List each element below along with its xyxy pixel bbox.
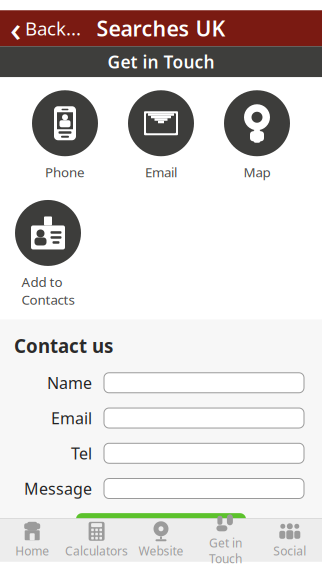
- button[interactable]: Add to Contacts: [0, 200, 96, 308]
- staticText: Add to Contacts: [21, 273, 74, 308]
- button[interactable]: Map: [209, 90, 305, 181]
- staticText: Map: [243, 163, 270, 181]
- button[interactable]: [104, 478, 304, 498]
- staticText: Message: [24, 478, 92, 499]
- button[interactable]: [104, 373, 304, 393]
- button[interactable]: [104, 408, 304, 428]
- button[interactable]: Website: [129, 518, 193, 562]
- button[interactable]: Social: [258, 518, 322, 562]
- staticText: Social: [273, 543, 306, 559]
- staticText: Contact us: [14, 333, 113, 358]
- button[interactable]: ‹: [0, 10, 81, 46]
- staticText: Back...: [25, 16, 81, 41]
- staticText: Name: [47, 372, 92, 393]
- staticText: Tel: [71, 443, 92, 464]
- button[interactable]: Calculators: [64, 518, 129, 562]
- staticText: Calculators: [65, 543, 128, 559]
- button[interactable]: Get in Touch: [193, 518, 258, 562]
- staticText: Get in Touch: [209, 535, 242, 567]
- staticText: Email: [145, 163, 177, 181]
- staticText: Email: [51, 407, 92, 429]
- button[interactable]: [104, 443, 304, 463]
- button[interactable]: Home: [0, 518, 64, 562]
- staticText: Get in Touch: [107, 50, 214, 73]
- button[interactable]: Phone: [17, 90, 113, 181]
- staticText: Home: [15, 543, 49, 559]
- staticText: Website: [138, 543, 183, 559]
- staticText: Phone: [45, 163, 85, 181]
- button[interactable]: [76, 513, 246, 535]
- button[interactable]: Email: [113, 90, 209, 181]
- staticText: ‹: [10, 5, 21, 51]
- staticText: Searches UK: [96, 14, 225, 42]
